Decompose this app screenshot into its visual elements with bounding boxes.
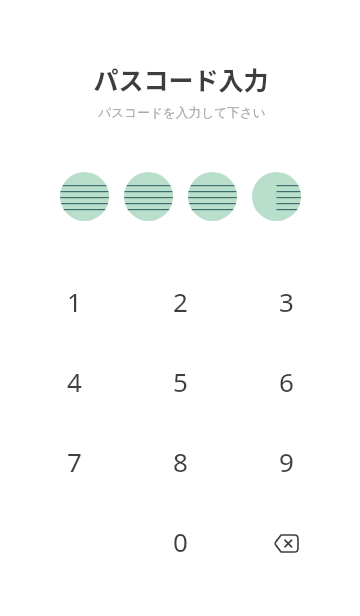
- button[interactable]: Delete: [233, 501, 339, 581]
- staticText: 8: [173, 444, 188, 479]
- button[interactable]: 5: [127, 341, 233, 421]
- button[interactable]: 3: [233, 261, 339, 341]
- button[interactable]: 9: [233, 421, 339, 501]
- button[interactable]: 6: [233, 341, 339, 421]
- button[interactable]: 8: [127, 421, 233, 501]
- button[interactable]: 0: [127, 501, 233, 581]
- other: Passcode entry field: [0, 172, 360, 221]
- button[interactable]: 1: [21, 261, 127, 341]
- staticText: 9: [279, 444, 294, 479]
- staticText: パスコードを入力して下さい: [98, 105, 266, 121]
- staticText: 3: [279, 284, 294, 319]
- staticText: 6: [279, 364, 294, 399]
- staticText: 4: [67, 364, 82, 399]
- staticText: 1: [67, 284, 82, 319]
- staticText: パスコード入力: [93, 61, 269, 97]
- button[interactable]: 4: [21, 341, 127, 421]
- button[interactable]: 2: [127, 261, 233, 341]
- staticText: 7: [67, 444, 82, 479]
- staticText: 5: [173, 364, 188, 399]
- button[interactable]: 7: [21, 421, 127, 501]
- staticText: 2: [173, 284, 188, 319]
- staticText: 0: [173, 524, 188, 559]
